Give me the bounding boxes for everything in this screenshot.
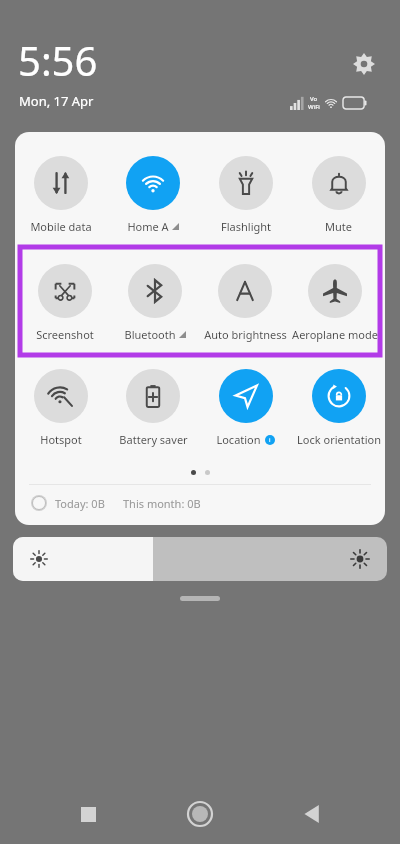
staticText: Flashlight [221,219,271,234]
staticText: Home A [127,219,169,234]
button[interactable]: Lock orientation [292,355,385,460]
button[interactable]: Auto brightness [200,250,290,355]
staticText: Bluetooth [124,327,176,342]
button[interactable]: Mute [292,142,385,247]
staticText: Auto brightness [204,327,287,342]
staticText: Battery saver [119,432,188,447]
staticText: Screenshot [36,327,94,342]
button[interactable]: Bluetooth [110,250,200,355]
button[interactable]: Screenshot [20,250,110,355]
button[interactable]: Settings [346,46,382,82]
button[interactable]: Recents [64,790,112,838]
staticText: Location [216,432,261,447]
button[interactable]: Back [288,790,336,838]
button[interactable]: Brightness [13,537,387,581]
staticText: Vo [310,95,318,103]
button[interactable]: Aeroplane mode [290,250,380,355]
staticText: Hotspot [40,432,82,447]
button[interactable]: Mobile data [15,142,107,247]
staticText: Mobile data [30,219,92,234]
staticText: 5:56 [18,33,98,87]
staticText: This month: 0B [123,496,201,511]
staticText: Mute [325,219,352,234]
staticText: WiFi [308,103,320,111]
staticText: Aeroplane mode [292,327,378,342]
staticText: Mon, 17 Apr [19,92,94,110]
button[interactable]: Hotspot [15,355,107,460]
staticText: Lock orientation [297,432,381,447]
button[interactable]: Flashlight [199,142,292,247]
staticText: Today: 0B [55,496,105,511]
staticText: i [269,436,271,444]
button[interactable]: Home A [107,142,199,247]
button[interactable]: Home [176,790,224,838]
button[interactable]: Location [199,355,292,460]
button[interactable]: Battery saver [107,355,199,460]
